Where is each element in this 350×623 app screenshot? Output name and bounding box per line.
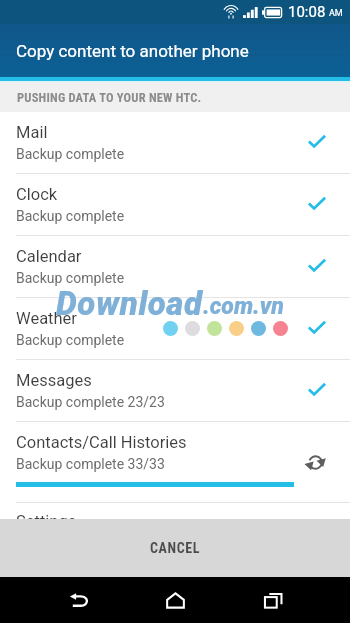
staticText: Messages [16, 371, 92, 390]
staticText: 10:08 [288, 3, 326, 21]
staticText: Backup complete [16, 146, 125, 162]
staticText: Clock [16, 185, 58, 204]
staticText: Backup complete [16, 208, 125, 224]
staticText: Backup complete [16, 332, 125, 348]
staticText: .com.vn [203, 293, 284, 320]
button[interactable]: Home [128, 577, 222, 623]
staticText: Mail [16, 123, 48, 142]
button[interactable]: Calendar [0, 236, 350, 298]
button[interactable]: Mail [0, 112, 350, 174]
button[interactable]: Messages [0, 360, 350, 422]
staticText: Copy content to another phone [16, 41, 249, 61]
button[interactable]: Back [32, 577, 126, 623]
button[interactable]: Contacts/Call Histories [0, 422, 350, 503]
button[interactable]: Weather [0, 298, 350, 360]
staticText: PUSHING DATA TO YOUR NEW HTC. [17, 90, 202, 105]
staticText: CANCEL [150, 540, 201, 556]
staticText: Backup complete 23/23 [16, 394, 165, 410]
staticText: Contacts/Call Histories [16, 433, 187, 452]
staticText: Calendar [16, 247, 82, 266]
staticText: Download [56, 284, 203, 323]
button[interactable]: Recent apps [226, 577, 320, 623]
button[interactable]: CANCEL [0, 519, 350, 577]
staticText: Backup complete 33/33 [16, 456, 165, 472]
button[interactable]: Clock [0, 174, 350, 236]
staticText: AM [329, 8, 343, 19]
staticText: Weather [16, 309, 77, 328]
button[interactable]: Settings [0, 503, 350, 519]
staticText: Settings [16, 512, 77, 519]
staticText: Backup complete [16, 270, 125, 286]
